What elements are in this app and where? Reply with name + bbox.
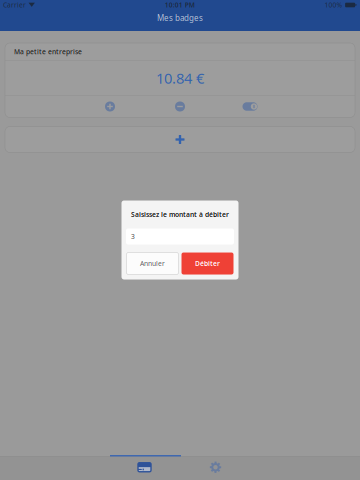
staticText: 10.84 € <box>156 68 204 88</box>
staticText: 100% <box>325 1 343 9</box>
staticText: 10:01 PM <box>165 1 195 9</box>
button[interactable]: Badges <box>109 456 180 480</box>
staticText: Annuler <box>140 259 165 268</box>
button[interactable]: Ajouter un badge <box>5 126 355 152</box>
button[interactable]: Débiter <box>181 252 233 274</box>
button[interactable]: Réglages <box>180 456 251 480</box>
button[interactable]: Créditer <box>75 95 145 117</box>
button[interactable]: Activer le badge <box>215 95 285 117</box>
staticText: Mes badges <box>157 13 203 23</box>
staticText: Carrier <box>3 1 26 9</box>
staticText: Débiter <box>195 259 220 268</box>
button[interactable]: Annuler <box>126 252 178 274</box>
staticText: Saisissez le montant à débiter <box>131 210 229 219</box>
staticText: 3 <box>131 232 135 241</box>
staticText: Ma petite entreprise <box>14 47 82 56</box>
button[interactable]: Débiter <box>145 95 215 117</box>
